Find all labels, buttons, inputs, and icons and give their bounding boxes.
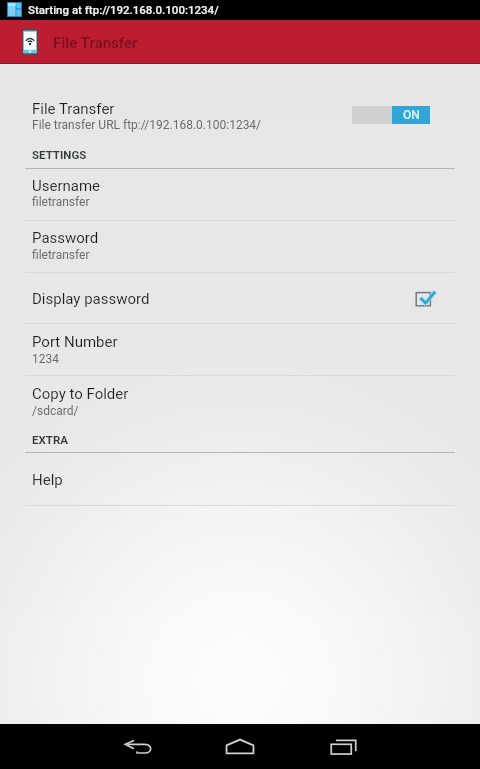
button[interactable]: Recent apps	[303, 724, 383, 769]
staticText: File Transfer	[32, 100, 115, 118]
staticText: /sdcard/	[32, 404, 79, 418]
button[interactable]: Back	[98, 724, 178, 769]
button[interactable]: Home	[200, 724, 280, 769]
staticText: Help	[32, 471, 63, 489]
staticText: Username	[32, 177, 101, 195]
button[interactable]	[0, 324, 480, 375]
button[interactable]: File transfer on/off	[352, 106, 430, 124]
button[interactable]	[0, 273, 480, 323]
staticText: Password	[32, 229, 99, 247]
staticText: Copy to Folder	[32, 385, 129, 403]
staticText: ON	[403, 108, 420, 122]
staticText: Starting at ftp://192.168.0.100:1234/	[28, 3, 219, 16]
staticText: Display password	[32, 290, 150, 308]
button[interactable]	[0, 454, 480, 505]
staticText: 1234	[32, 352, 59, 366]
staticText: Port Number	[32, 333, 118, 351]
staticText: filetransfer	[32, 248, 90, 262]
staticText: EXTRA	[32, 433, 68, 446]
staticText: SETTINGS	[32, 148, 87, 161]
button[interactable]	[0, 376, 480, 426]
staticText: File transfer URL ftp://192.168.0.100:12…	[32, 118, 262, 132]
button[interactable]	[0, 221, 480, 272]
staticText: filetransfer	[32, 195, 90, 209]
button[interactable]: Display password checkbox	[415, 288, 439, 310]
button[interactable]	[0, 170, 480, 220]
button[interactable]	[0, 88, 480, 142]
staticText: File Transfer	[53, 34, 138, 52]
